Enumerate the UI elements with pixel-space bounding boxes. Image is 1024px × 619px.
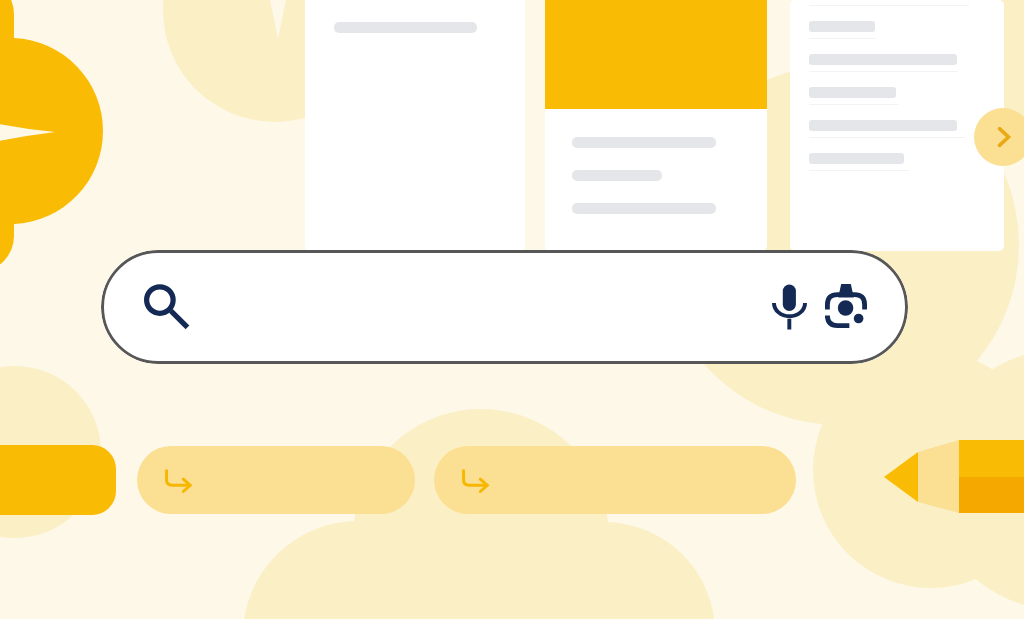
- button[interactable]: [0, 445, 116, 515]
- button[interactable]: Search: [101, 250, 908, 364]
- button[interactable]: Next: [974, 108, 1024, 166]
- button[interactable]: Voice search: [772, 284, 807, 330]
- button[interactable]: [137, 446, 415, 514]
- button[interactable]: [790, 0, 1004, 251]
- other: Search: [144, 283, 190, 329]
- button[interactable]: [545, 0, 767, 251]
- button[interactable]: [434, 446, 796, 514]
- button[interactable]: [305, 0, 525, 251]
- button[interactable]: Google Lens: [825, 284, 867, 328]
